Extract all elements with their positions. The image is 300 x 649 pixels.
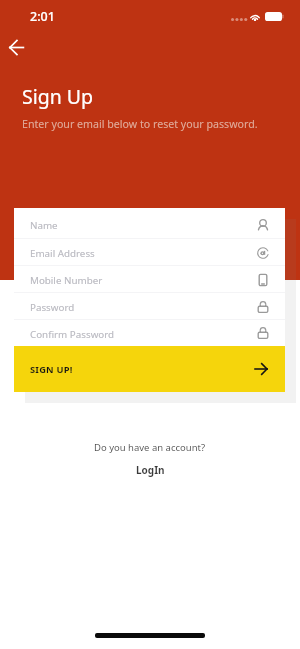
button[interactable]: SIGN UP!: [14, 346, 285, 392]
staticText: Sign Up: [22, 83, 94, 110]
button[interactable]: LogIn: [126, 461, 175, 479]
staticText: Enter your email below to reset your pas…: [22, 117, 258, 132]
staticText: LogIn: [136, 463, 165, 477]
staticText: Mobile Number: [30, 274, 103, 287]
staticText: Do you have an account?: [94, 441, 206, 454]
button[interactable]: Mobile Number: [14, 266, 285, 293]
staticText: 2:01: [30, 8, 55, 25]
button[interactable]: Email Address: [14, 239, 285, 266]
staticText: Name: [30, 219, 58, 232]
button[interactable]: Back: [0, 31, 33, 64]
staticText: SIGN UP!: [30, 363, 73, 376]
staticText: Password: [30, 301, 75, 314]
staticText: Email Address: [30, 247, 95, 260]
button[interactable]: Name: [14, 208, 285, 239]
staticText: Confirm Password: [30, 328, 115, 341]
button[interactable]: Password: [14, 293, 285, 320]
button[interactable]: Confirm Password: [14, 320, 285, 346]
